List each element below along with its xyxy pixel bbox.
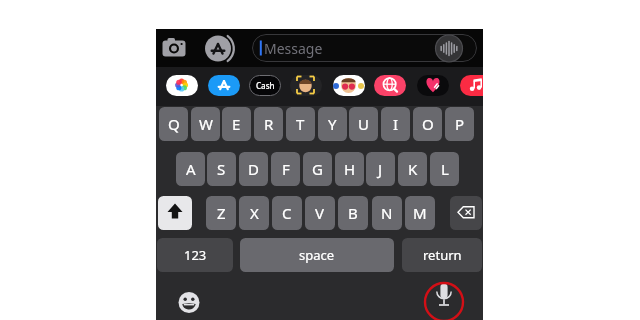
staticText: 123: [184, 246, 207, 264]
staticText: N: [381, 203, 393, 223]
staticText: Y: [328, 114, 337, 134]
button[interactable]: [174, 287, 204, 317]
staticText: K: [408, 159, 418, 179]
button[interactable]: G: [303, 152, 332, 186]
button[interactable]: Message: [252, 34, 477, 62]
staticText: M: [413, 203, 427, 223]
button[interactable]: space: [240, 238, 394, 272]
staticText: E: [232, 114, 241, 134]
staticText: space: [299, 246, 335, 264]
button[interactable]: V: [305, 196, 335, 230]
button[interactable]: E: [222, 107, 251, 141]
staticText: U: [358, 114, 369, 134]
button[interactable]: C: [272, 196, 302, 230]
button[interactable]: [429, 287, 459, 317]
staticText: G: [312, 159, 323, 179]
button[interactable]: R: [254, 107, 283, 141]
button[interactable]: 123: [157, 238, 233, 272]
button[interactable]: [290, 75, 322, 96]
button[interactable]: K: [398, 152, 427, 186]
staticText: F: [282, 159, 290, 179]
staticText: T: [296, 114, 305, 134]
button[interactable]: Y: [318, 107, 347, 141]
button[interactable]: W: [191, 107, 220, 141]
button[interactable]: O: [413, 107, 442, 141]
button[interactable]: [249, 75, 281, 96]
staticText: P: [455, 114, 465, 134]
staticText: D: [248, 159, 259, 179]
staticText: Q: [168, 114, 180, 134]
button[interactable]: I: [381, 107, 410, 141]
button[interactable]: L: [430, 152, 459, 186]
staticText: Z: [217, 203, 226, 223]
staticText: W: [199, 114, 213, 134]
staticText: return: [423, 246, 462, 264]
button[interactable]: A: [176, 152, 205, 186]
button[interactable]: X: [239, 196, 269, 230]
button[interactable]: [450, 196, 482, 230]
staticText: Cash: [256, 80, 275, 91]
button[interactable]: [333, 75, 365, 96]
button[interactable]: [208, 75, 240, 96]
button[interactable]: [158, 196, 192, 230]
button[interactable]: return: [402, 238, 482, 272]
staticText: J: [378, 159, 383, 179]
button[interactable]: [166, 75, 198, 96]
button[interactable]: J: [366, 152, 395, 186]
button[interactable]: [203, 34, 239, 63]
staticText: L: [441, 159, 449, 179]
button[interactable]: B: [338, 196, 368, 230]
button[interactable]: [460, 75, 483, 96]
button[interactable]: [160, 35, 190, 62]
staticText: O: [422, 114, 434, 134]
staticText: S: [217, 159, 226, 179]
button[interactable]: Z: [206, 196, 236, 230]
staticText: A: [186, 159, 196, 179]
staticText: I: [393, 114, 399, 134]
button[interactable]: Q: [159, 107, 188, 141]
button[interactable]: M: [405, 196, 435, 230]
button[interactable]: F: [271, 152, 300, 186]
staticText: X: [250, 203, 259, 223]
staticText: R: [264, 114, 274, 134]
button[interactable]: [417, 75, 449, 96]
button[interactable]: [374, 75, 406, 96]
staticText: C: [282, 203, 292, 223]
button[interactable]: S: [207, 152, 236, 186]
button[interactable]: H: [335, 152, 364, 186]
staticText: H: [344, 159, 356, 179]
button[interactable]: P: [445, 107, 474, 141]
button[interactable]: T: [286, 107, 315, 141]
button[interactable]: D: [239, 152, 268, 186]
staticText: V: [315, 203, 325, 223]
button[interactable]: U: [349, 107, 378, 141]
button[interactable]: N: [372, 196, 402, 230]
staticText: Message: [264, 39, 323, 58]
staticText: B: [348, 203, 358, 223]
